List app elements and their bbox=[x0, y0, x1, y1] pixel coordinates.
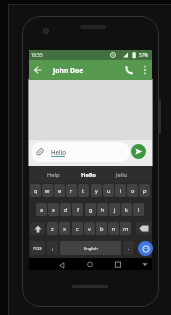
staticText: p bbox=[143, 187, 147, 195]
staticText: a bbox=[40, 206, 44, 214]
button[interactable]: Help bbox=[39, 166, 67, 183]
staticText: d bbox=[64, 206, 68, 214]
button[interactable]: f bbox=[72, 203, 83, 216]
button[interactable]: w bbox=[42, 184, 53, 197]
staticText: 57% bbox=[139, 52, 149, 58]
button[interactable]: r bbox=[66, 184, 77, 197]
button[interactable]: y bbox=[91, 184, 102, 197]
staticText: k bbox=[125, 206, 128, 214]
staticText: r bbox=[70, 187, 73, 195]
button[interactable]: v bbox=[84, 222, 95, 235]
button[interactable] bbox=[138, 241, 153, 256]
button[interactable] bbox=[136, 222, 151, 235]
staticText: t bbox=[82, 187, 85, 195]
button[interactable]: c bbox=[72, 222, 83, 235]
button[interactable]: s bbox=[48, 203, 59, 216]
staticText: h bbox=[101, 206, 105, 214]
staticText: q bbox=[34, 187, 38, 195]
staticText: 10:55 bbox=[31, 52, 43, 58]
button[interactable]: z bbox=[47, 222, 58, 235]
button[interactable]: English bbox=[60, 241, 121, 255]
button[interactable]: l bbox=[133, 203, 144, 216]
button[interactable] bbox=[84, 260, 96, 269]
staticText: English bbox=[84, 246, 98, 251]
staticText: z bbox=[51, 225, 54, 233]
staticText: o bbox=[131, 187, 135, 195]
staticText: Hello bbox=[51, 148, 67, 156]
button[interactable]: ?123 bbox=[30, 241, 45, 255]
staticText: j bbox=[114, 206, 116, 214]
staticText: g bbox=[89, 206, 93, 214]
staticText: c bbox=[76, 225, 79, 233]
button[interactable] bbox=[30, 222, 45, 235]
staticText: Hello bbox=[81, 171, 96, 179]
staticText: , bbox=[52, 245, 54, 252]
button[interactable]: t bbox=[78, 184, 89, 197]
staticText: e bbox=[58, 187, 62, 195]
button[interactable]: , bbox=[47, 241, 58, 255]
staticText: l bbox=[138, 206, 140, 214]
button[interactable] bbox=[31, 142, 130, 162]
staticText: John Doe bbox=[53, 66, 84, 75]
staticText: b bbox=[100, 225, 104, 233]
staticText: v bbox=[88, 225, 91, 233]
button[interactable] bbox=[131, 144, 146, 159]
button[interactable] bbox=[139, 63, 151, 77]
staticText: Jello bbox=[116, 171, 128, 179]
button[interactable]: Hello bbox=[74, 166, 102, 183]
staticText: x bbox=[63, 225, 66, 233]
staticText: w bbox=[45, 187, 50, 195]
staticText: n bbox=[112, 225, 116, 233]
button[interactable]: m bbox=[120, 222, 131, 235]
staticText: . bbox=[128, 245, 130, 252]
button[interactable]: b bbox=[96, 222, 107, 235]
staticText: m bbox=[123, 225, 129, 233]
button[interactable]: h bbox=[97, 203, 108, 216]
button[interactable]: j bbox=[109, 203, 120, 216]
button[interactable]: i bbox=[115, 184, 126, 197]
staticText: ?123 bbox=[33, 246, 42, 251]
staticText: y bbox=[95, 187, 98, 195]
staticText: s bbox=[52, 206, 55, 214]
button[interactable] bbox=[56, 261, 68, 270]
button[interactable]: p bbox=[139, 184, 150, 197]
button[interactable]: k bbox=[121, 203, 132, 216]
button[interactable] bbox=[31, 63, 45, 77]
staticText: i bbox=[120, 187, 122, 195]
button[interactable]: q bbox=[30, 184, 41, 197]
staticText: f bbox=[77, 206, 79, 214]
button[interactable]: d bbox=[60, 203, 71, 216]
button[interactable] bbox=[139, 260, 151, 269]
button[interactable]: . bbox=[123, 241, 134, 255]
button[interactable] bbox=[122, 63, 136, 77]
button[interactable]: n bbox=[108, 222, 119, 235]
button[interactable]: x bbox=[59, 222, 70, 235]
button[interactable]: u bbox=[103, 184, 114, 197]
staticText: Help bbox=[47, 171, 60, 179]
button[interactable]: o bbox=[127, 184, 138, 197]
button[interactable]: Jello bbox=[108, 166, 136, 183]
staticText: u bbox=[107, 187, 111, 195]
button[interactable] bbox=[112, 260, 124, 269]
button[interactable]: e bbox=[54, 184, 65, 197]
button[interactable]: a bbox=[36, 203, 47, 216]
button[interactable]: g bbox=[85, 203, 96, 216]
